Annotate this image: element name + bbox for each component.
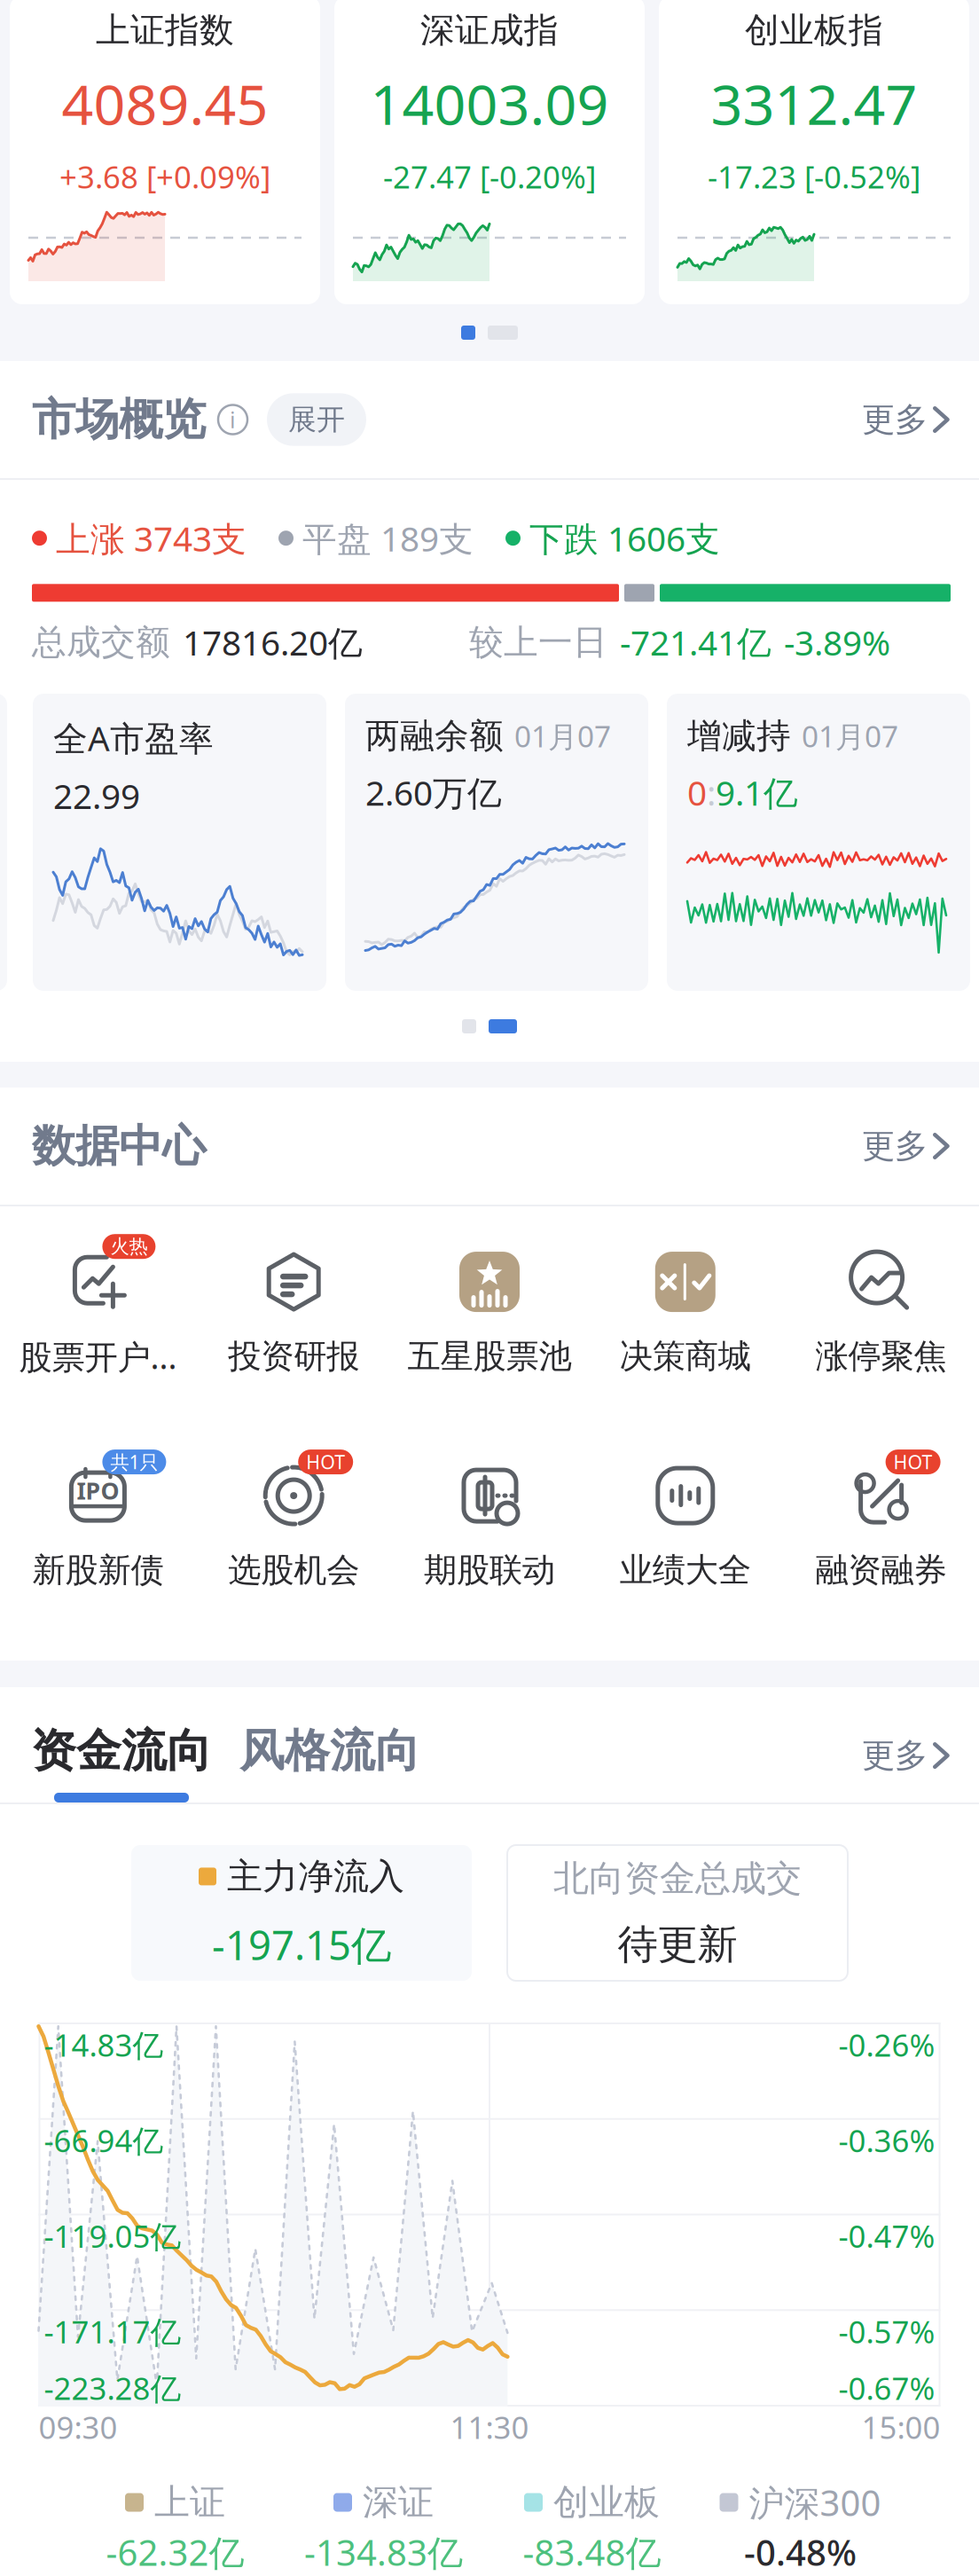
staticText: 新股新债 bbox=[32, 1550, 164, 1590]
button[interactable]: 更多 bbox=[862, 1117, 949, 1175]
staticText: 下跌 1606支 bbox=[529, 515, 720, 561]
staticText: -0.47% bbox=[838, 2215, 935, 2256]
staticText: 更多 bbox=[862, 1126, 928, 1166]
button[interactable]: 火热 bbox=[0, 1228, 196, 1383]
staticText: 待更新 bbox=[618, 1920, 737, 1969]
staticText: 沪深300 bbox=[749, 2479, 881, 2526]
staticText: 展开 bbox=[288, 402, 345, 437]
staticText: 选股机会 bbox=[228, 1550, 359, 1590]
staticText: 9.1亿 bbox=[716, 770, 798, 815]
staticText: 数据中心 bbox=[32, 1119, 206, 1173]
staticText: -27.47 [-0.20%] bbox=[383, 156, 596, 197]
staticText: 业绩大全 bbox=[620, 1550, 751, 1590]
staticText: 融资融券 bbox=[815, 1550, 947, 1590]
staticText: 较上一日 bbox=[469, 621, 607, 663]
button[interactable]: 全A市盈率 bbox=[33, 694, 326, 991]
staticText: 深证 bbox=[363, 2481, 434, 2524]
staticText: 22.99 bbox=[53, 773, 140, 818]
button[interactable]: 投资研报 bbox=[196, 1228, 392, 1383]
staticText: 深证成指 bbox=[420, 9, 559, 51]
staticText: 创业板指 bbox=[745, 9, 883, 51]
staticText: 更多 bbox=[862, 399, 928, 440]
button[interactable]: 期股联动 bbox=[392, 1441, 587, 1597]
button[interactable]: 资金流向 bbox=[30, 1723, 213, 1802]
staticText: 资金流向 bbox=[31, 1723, 212, 1779]
staticText: 期股联动 bbox=[424, 1550, 555, 1590]
staticText: 2.60万亿 bbox=[365, 770, 502, 815]
staticText: 3312.47 bbox=[711, 66, 917, 140]
button[interactable]: 业绩大全 bbox=[587, 1441, 783, 1597]
staticText: -197.15亿 bbox=[212, 1918, 391, 1971]
staticText: -0.48% bbox=[744, 2528, 857, 2576]
staticText: 共1只 bbox=[110, 1449, 158, 1474]
button[interactable]: 更多 bbox=[862, 390, 949, 449]
staticText: 风格流向 bbox=[239, 1723, 420, 1779]
staticText: 增减持 bbox=[687, 715, 791, 757]
staticText: HOT bbox=[306, 1449, 345, 1474]
staticText: -0.67% bbox=[838, 2368, 935, 2408]
staticText: 上涨 3743支 bbox=[56, 515, 247, 561]
staticText: -3.89% bbox=[784, 619, 890, 665]
staticText: -14.83亿 bbox=[44, 2024, 164, 2065]
button[interactable]: 主力净流入 bbox=[131, 1845, 472, 1981]
staticText: 主力净流入 bbox=[227, 1855, 404, 1898]
staticText: 更多 bbox=[862, 1735, 928, 1776]
button[interactable]: 涨停聚焦 bbox=[783, 1228, 979, 1383]
button[interactable]: 北向资金总成交 bbox=[507, 1845, 848, 1981]
staticText: 两融余额 bbox=[365, 715, 504, 757]
staticText: 火热 bbox=[110, 1235, 148, 1258]
button[interactable]: 风格流向 bbox=[239, 1723, 420, 1802]
button[interactable]: 展开 bbox=[267, 393, 366, 446]
button[interactable]: IPO bbox=[0, 1441, 196, 1597]
staticText: 决策商城 bbox=[620, 1336, 751, 1377]
staticText: 17816.20亿 bbox=[183, 619, 363, 665]
staticText: -0.57% bbox=[838, 2311, 935, 2352]
staticText: 五星股票池 bbox=[407, 1336, 572, 1377]
staticText: : bbox=[707, 770, 716, 815]
button[interactable]: 两融余额 bbox=[345, 694, 648, 991]
staticText: 01月07 bbox=[514, 716, 611, 756]
staticText: -171.17亿 bbox=[44, 2311, 181, 2352]
staticText: -62.32亿 bbox=[106, 2528, 244, 2576]
button[interactable]: HOT bbox=[196, 1441, 392, 1597]
button[interactable]: 决策商城 bbox=[587, 1228, 783, 1383]
staticText: 上证指数 bbox=[96, 9, 234, 51]
staticText: HOT bbox=[894, 1449, 933, 1474]
staticText: -119.05亿 bbox=[44, 2215, 181, 2256]
staticText: 北向资金总成交 bbox=[553, 1857, 802, 1900]
staticText: 09:30 bbox=[39, 2407, 117, 2447]
button[interactable]: 增减持 bbox=[667, 694, 970, 991]
staticText: 总成交额 bbox=[32, 621, 170, 663]
staticText: IPO bbox=[77, 1475, 119, 1506]
staticText: 15:00 bbox=[862, 2407, 940, 2447]
staticText: 11:30 bbox=[450, 2407, 529, 2447]
staticText: -721.41亿 bbox=[620, 619, 771, 665]
staticText: 涨停聚焦 bbox=[815, 1336, 947, 1377]
button[interactable]: 更多 bbox=[862, 1726, 949, 1785]
staticText: 平盘 189支 bbox=[302, 515, 474, 561]
button[interactable]: 深证成指 bbox=[334, 0, 645, 304]
staticText: 4089.45 bbox=[62, 66, 268, 140]
staticText: 股票开户... bbox=[19, 1334, 177, 1378]
staticText: 上证 bbox=[154, 2481, 225, 2524]
staticText: 14003.09 bbox=[370, 66, 609, 140]
staticText: 创业板 bbox=[553, 2481, 660, 2524]
staticText: -83.48亿 bbox=[523, 2528, 661, 2576]
staticText: 0 bbox=[687, 770, 707, 815]
staticText: 全A市盈率 bbox=[53, 715, 214, 760]
button[interactable]: 创业板指 bbox=[659, 0, 969, 304]
staticText: 01月07 bbox=[802, 716, 898, 756]
staticText: i bbox=[230, 405, 236, 434]
staticText: +3.68 [+0.09%] bbox=[59, 156, 270, 197]
button[interactable]: HOT bbox=[783, 1441, 979, 1597]
staticText: -134.83亿 bbox=[304, 2528, 463, 2576]
staticText: -17.23 [-0.52%] bbox=[708, 156, 920, 197]
staticText: -223.28亿 bbox=[44, 2368, 181, 2408]
staticText: 市场概览 bbox=[32, 393, 206, 446]
staticText: -0.36% bbox=[838, 2120, 935, 2161]
staticText: 投资研报 bbox=[228, 1336, 359, 1377]
staticText: -66.94亿 bbox=[44, 2120, 164, 2161]
button[interactable]: 上证指数 bbox=[10, 0, 320, 304]
staticText: -0.26% bbox=[838, 2024, 935, 2065]
button[interactable]: 五星股票池 bbox=[392, 1228, 587, 1383]
